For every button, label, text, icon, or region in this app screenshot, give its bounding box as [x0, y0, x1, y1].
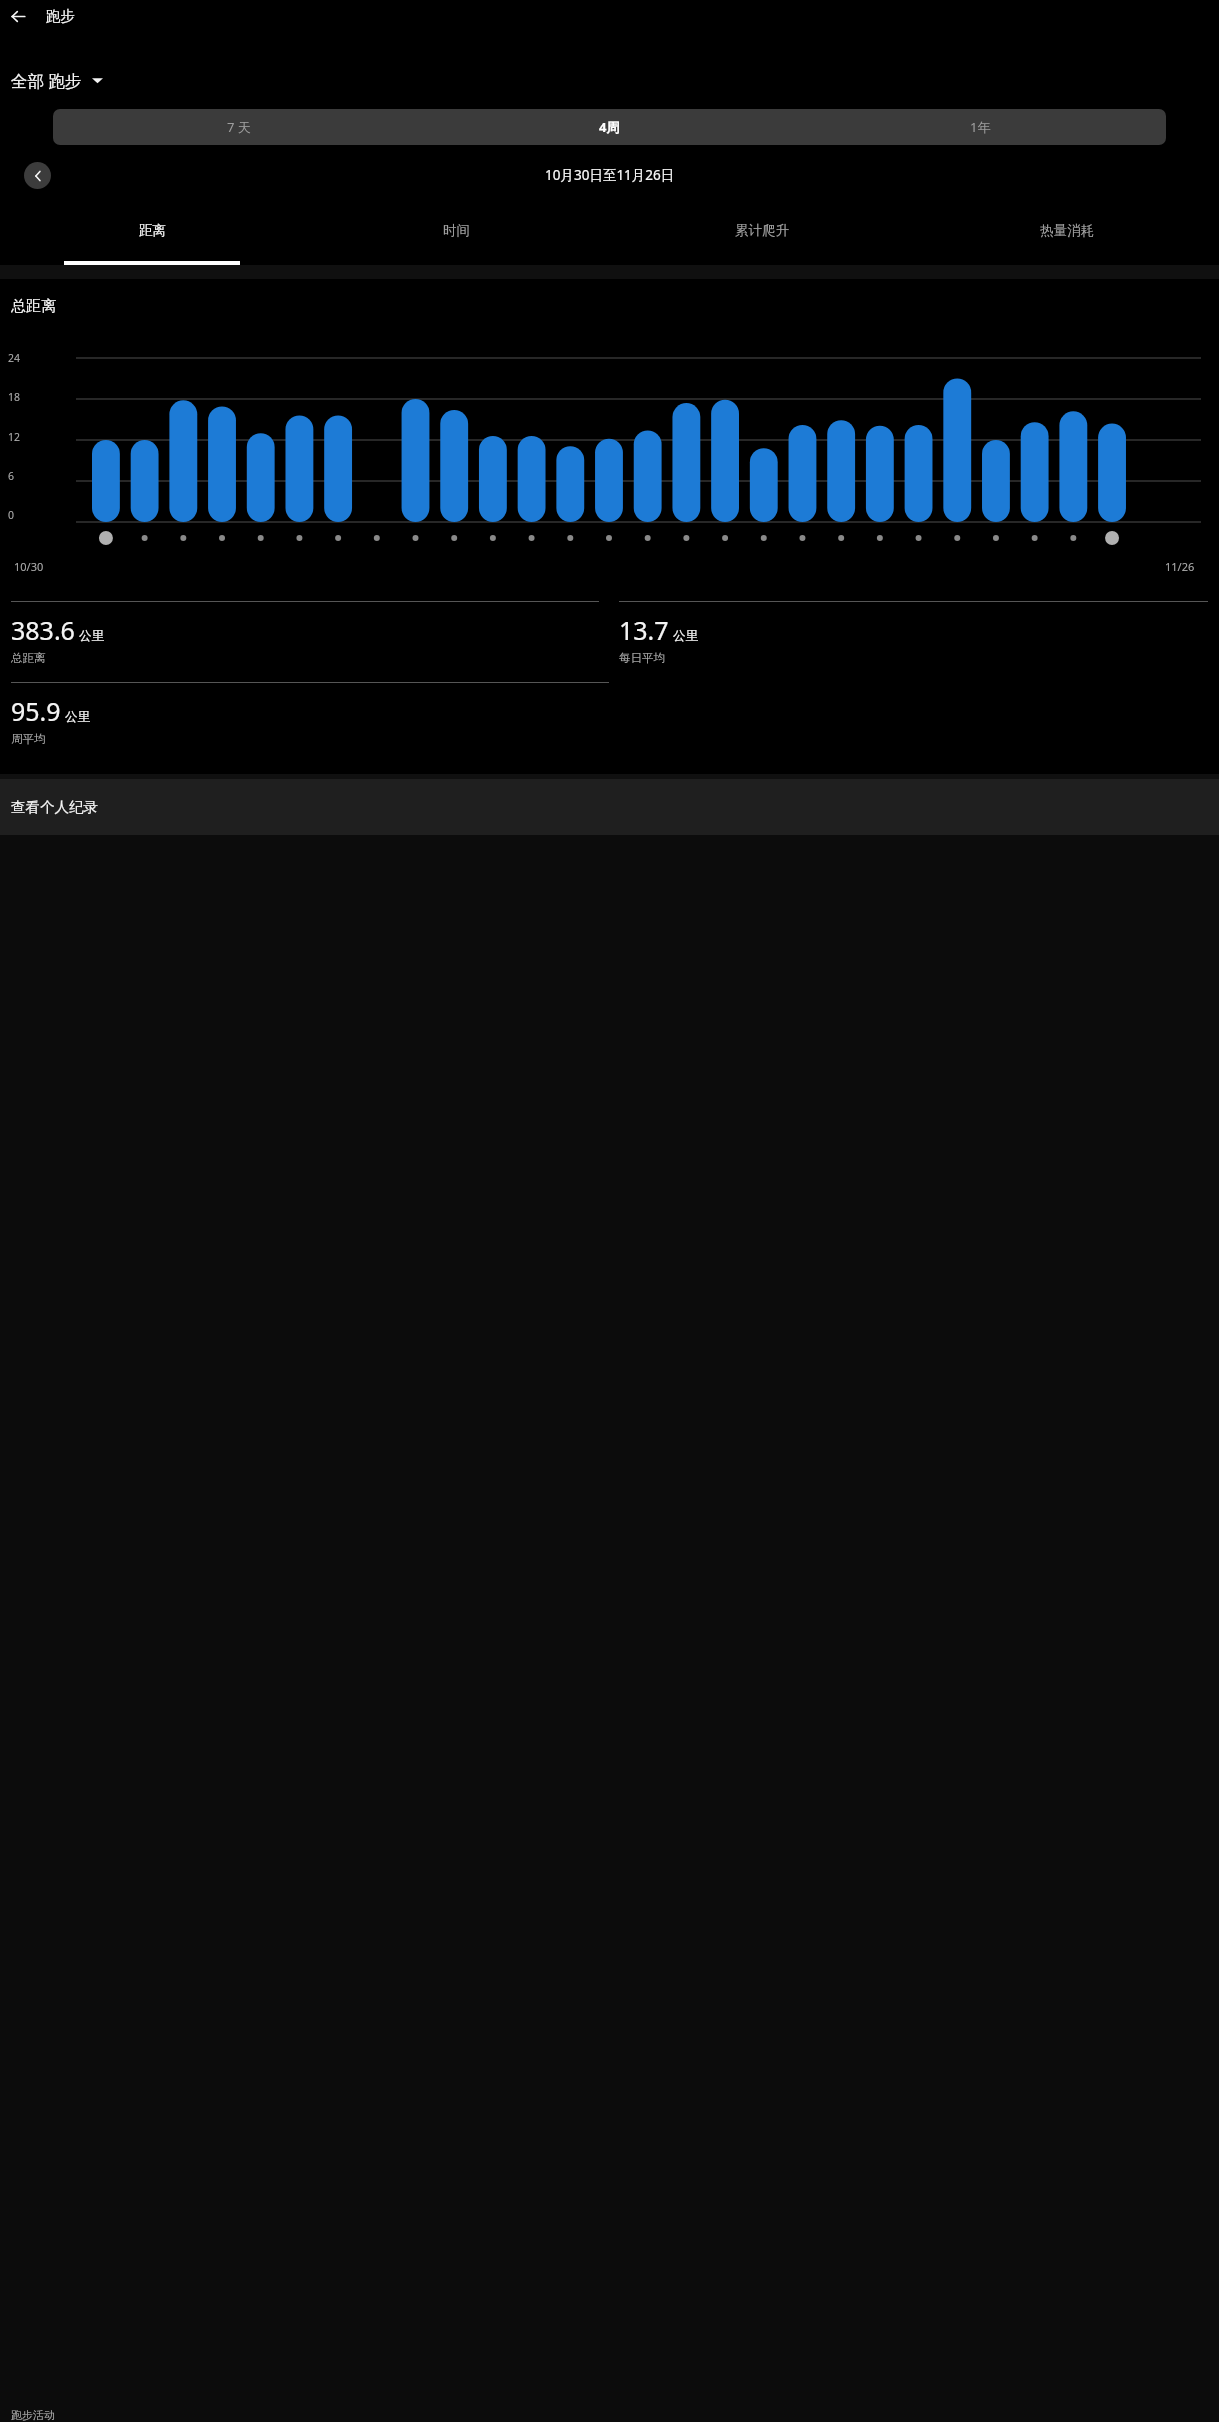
staticText: 4周 — [599, 118, 620, 136]
staticText: 7 天 — [227, 118, 251, 136]
staticText: 13.7 — [619, 613, 669, 647]
button[interactable]: 距离 — [0, 216, 304, 265]
staticText: 公里 — [79, 628, 104, 644]
staticText: 24 — [8, 351, 21, 365]
staticText: 11/26 — [1165, 559, 1195, 574]
staticText: 10月30日至11月26日 — [545, 166, 675, 184]
staticText: 公里 — [65, 709, 90, 725]
button[interactable]: Previous period — [24, 162, 51, 189]
button[interactable]: 查看个人纪录 — [0, 779, 1219, 835]
button[interactable]: 1年 — [795, 109, 1166, 145]
button[interactable]: 7 天 — [53, 109, 424, 145]
button[interactable]: Back — [6, 4, 30, 28]
staticText: 查看个人纪录 — [11, 798, 98, 816]
staticText: 公里 — [673, 628, 698, 644]
button[interactable]: 时间 — [304, 216, 609, 265]
staticText: 周平均 — [11, 732, 46, 746]
staticText: 每日平均 — [619, 651, 665, 665]
staticText: 距离 — [139, 222, 166, 239]
staticText: 6 — [8, 469, 15, 483]
button[interactable]: 累计爬升 — [609, 216, 914, 265]
staticText: 时间 — [443, 222, 470, 239]
staticText: 跑步 — [46, 7, 75, 25]
staticText: 全部 跑步 — [11, 69, 82, 92]
staticText: 10/30 — [14, 559, 44, 574]
button[interactable]: 4周 — [424, 109, 795, 145]
staticText: 12 — [8, 430, 21, 444]
staticText: 18 — [8, 390, 21, 404]
staticText: 总距离 — [11, 651, 46, 665]
staticText: 热量消耗 — [1040, 222, 1094, 239]
button[interactable]: 全部 跑步 — [11, 69, 103, 92]
staticText: 累计爬升 — [735, 222, 789, 239]
staticText: 95.9 — [11, 694, 61, 728]
staticText: 1年 — [970, 118, 991, 136]
staticText: 跑步活动 — [11, 2408, 55, 2422]
staticText: 总距离 — [11, 297, 56, 316]
button[interactable]: 热量消耗 — [914, 216, 1219, 265]
staticText: 0 — [8, 508, 15, 522]
staticText: 383.6 — [11, 613, 75, 647]
